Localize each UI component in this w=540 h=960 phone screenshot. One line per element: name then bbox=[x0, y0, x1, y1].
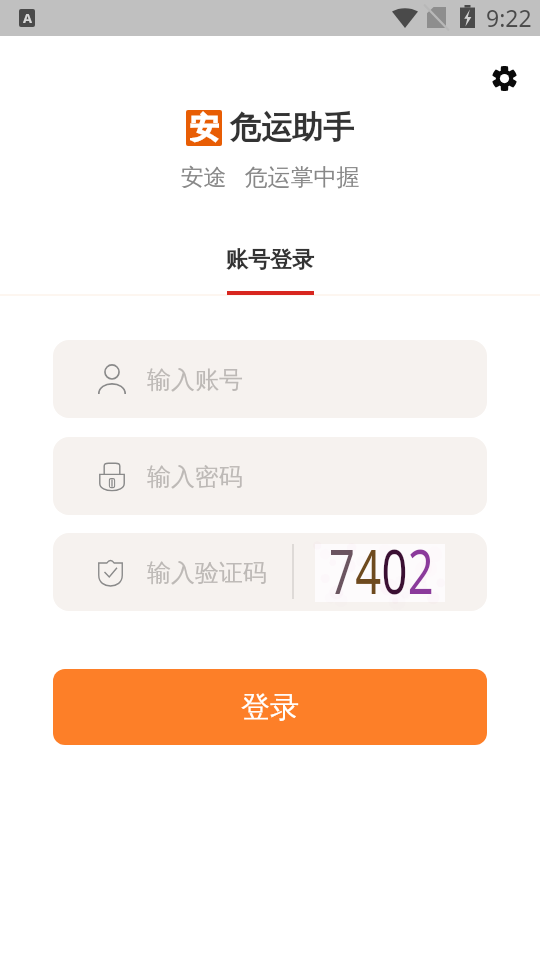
staticText: 登录 bbox=[241, 689, 299, 726]
button[interactable]: 输入验证码 bbox=[53, 533, 487, 611]
button[interactable]: 账号登录 bbox=[215, 246, 325, 300]
staticText: 输入密码 bbox=[147, 462, 243, 492]
staticText: 4 bbox=[355, 533, 382, 606]
staticText: 0 bbox=[382, 533, 408, 606]
staticText: 安 bbox=[190, 110, 219, 146]
button[interactable]: Settings bbox=[486, 60, 522, 96]
button[interactable]: 输入账号 bbox=[53, 340, 487, 418]
button[interactable]: 登录 bbox=[53, 669, 487, 745]
staticText: 2 bbox=[408, 533, 434, 606]
staticText: 9:22 bbox=[486, 2, 532, 33]
staticText: 安途 危运掌中握 bbox=[0, 160, 540, 191]
staticText: 账号登录 bbox=[226, 246, 314, 274]
staticText: 输入账号 bbox=[147, 365, 243, 395]
staticText: A bbox=[23, 9, 32, 27]
staticText: 7 bbox=[329, 533, 355, 606]
button[interactable]: 输入密码 bbox=[53, 437, 487, 515]
staticText: 输入验证码 bbox=[147, 558, 267, 588]
staticText: 危运助手 bbox=[230, 108, 354, 147]
